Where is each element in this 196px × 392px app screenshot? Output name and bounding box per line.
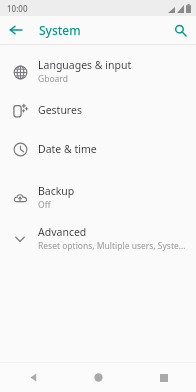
button[interactable]: Backup bbox=[0, 177, 196, 218]
staticText: Languages & input bbox=[38, 58, 132, 72]
button[interactable]: Home bbox=[66, 363, 131, 392]
staticText: Gestures bbox=[38, 103, 82, 117]
staticText: System bbox=[39, 22, 81, 38]
button[interactable]: Gestures bbox=[0, 92, 196, 128]
button[interactable]: Advanced bbox=[0, 218, 196, 259]
staticText: Reset options, Multiple users, System up… bbox=[38, 240, 188, 252]
staticText: Gboard bbox=[38, 73, 68, 85]
staticText: Off bbox=[38, 199, 51, 211]
staticText: Advanced bbox=[38, 225, 87, 239]
button[interactable]: Search bbox=[168, 18, 192, 42]
button[interactable]: Recents bbox=[131, 363, 196, 392]
button[interactable]: Back bbox=[4, 18, 28, 42]
button[interactable]: Back bbox=[0, 363, 66, 392]
staticText: Backup bbox=[38, 184, 75, 198]
button[interactable]: Date & time bbox=[0, 128, 196, 169]
staticText: 10:00 bbox=[7, 3, 28, 14]
staticText: Date & time bbox=[38, 142, 97, 156]
button[interactable]: Languages & input bbox=[0, 51, 196, 92]
